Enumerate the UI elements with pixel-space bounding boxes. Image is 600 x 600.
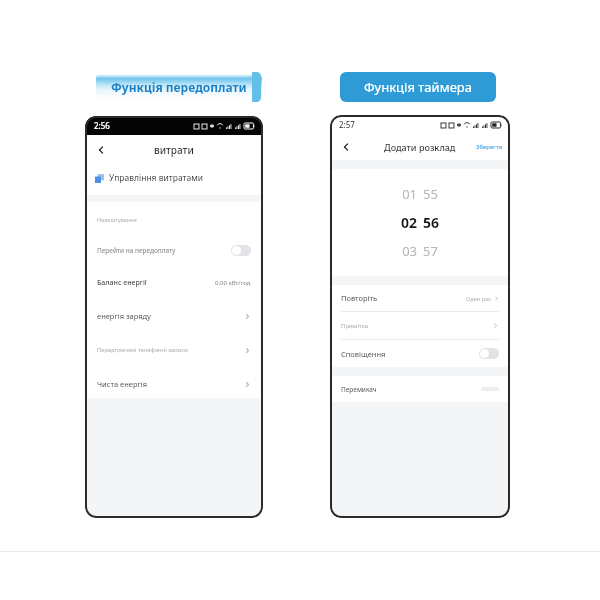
staticText: 56 [423,213,447,232]
button[interactable]: Баланс енергії [97,273,251,293]
button[interactable]: Перейти на передоплату [97,239,251,261]
staticText: 03 [393,242,417,260]
button[interactable]: Сповіщення [341,340,499,367]
button[interactable]: Back [336,137,356,157]
button[interactable]: Функція таймера [340,72,496,102]
button[interactable]: Передплачені телефонні записи [97,341,251,359]
staticText: 0,00 кВт/год [215,279,251,287]
staticText: Чиста енергія [97,379,147,389]
staticText: Функція таймера [364,78,472,96]
staticText: Додати розклад [384,141,456,153]
staticText: Сповіщення [341,349,386,359]
staticText: 57 [423,242,447,260]
staticText: 01 [393,185,417,203]
staticText: 2:56 [94,120,110,131]
staticText: енергія заряду [97,311,151,321]
staticText: Повторіть [341,293,378,303]
button[interactable]: Чиста енергія [97,375,251,393]
staticText: 55 [423,185,447,203]
button[interactable]: Управління витратами [85,165,263,191]
staticText: Перейти на передоплату [97,246,231,255]
staticText: Зберегти [476,143,503,151]
staticText: Передплачені телефонні записи [97,346,188,354]
button[interactable]: Back [91,140,111,160]
staticText: Баланс енергії [97,278,147,288]
staticText: 02 [393,213,417,232]
staticText: Один раз [466,295,491,302]
button[interactable]: Зберегти [476,143,503,151]
staticText: Налаштування [97,216,137,223]
button[interactable]: Повторіть [341,285,499,311]
staticText: Управління витратами [109,172,204,184]
button[interactable]: енергія заряду [97,307,251,325]
button[interactable]: Toggle [479,348,499,359]
staticText: Примітка [341,322,369,330]
button[interactable]: Перемикач [330,376,510,402]
staticText: Перемикач [341,385,377,394]
button[interactable]: Примітка [341,312,499,339]
staticText: 2:57 [339,119,355,130]
staticText: Функція передоплати [111,79,247,95]
staticText: витрати [154,143,194,157]
button[interactable]: Toggle [231,245,251,256]
